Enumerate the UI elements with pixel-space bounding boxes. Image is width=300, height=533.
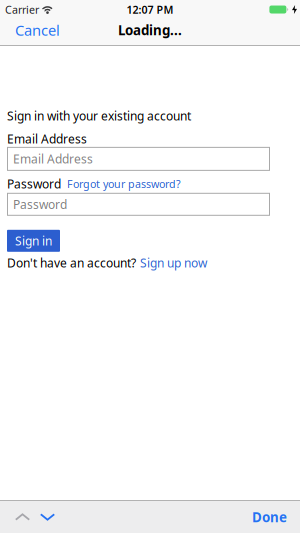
staticText: Sign in with your existing account	[7, 108, 191, 124]
button[interactable]	[40, 513, 55, 520]
button[interactable]: Done	[252, 508, 287, 526]
button[interactable]: Password	[7, 193, 270, 216]
staticText: Forgot your password?	[67, 177, 181, 191]
staticText: Email Address	[7, 131, 87, 147]
staticText: Loading...	[118, 21, 182, 39]
staticText: Done	[252, 508, 287, 526]
staticText: Carrier	[5, 2, 39, 17]
staticText: Sign up now	[140, 255, 207, 271]
staticText: Cancel	[15, 20, 60, 40]
button[interactable]: Sign up now	[140, 255, 207, 271]
staticText: Email Address	[13, 151, 93, 167]
button[interactable]: Email Address	[7, 147, 270, 171]
button[interactable]	[15, 513, 30, 520]
staticText: Don't have an account?	[7, 255, 136, 271]
staticText: Sign in	[15, 233, 52, 249]
button[interactable]: Cancel	[15, 20, 60, 40]
button[interactable]: Forgot your password?	[67, 177, 181, 191]
staticText: Password	[13, 196, 67, 212]
staticText: 12:07 PM	[126, 2, 173, 17]
button[interactable]: Sign in	[7, 230, 60, 252]
staticText: Password	[7, 176, 61, 192]
